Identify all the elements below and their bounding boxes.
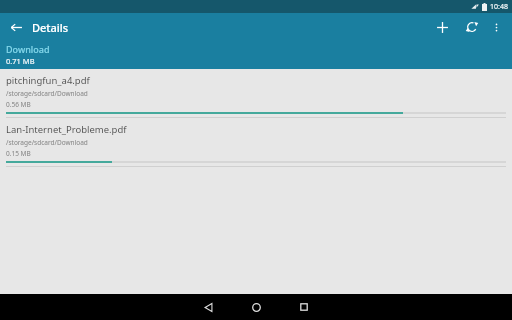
button[interactable]: More options bbox=[486, 17, 506, 37]
button[interactable]: Refresh bbox=[460, 15, 484, 39]
staticText: /storage/sdcard/Download bbox=[6, 89, 88, 98]
button[interactable]: Back bbox=[6, 16, 71, 38]
button[interactable]: Back bbox=[184, 294, 232, 320]
button[interactable]: Download bbox=[0, 41, 512, 69]
button[interactable]: Home bbox=[232, 294, 280, 320]
button[interactable]: Lan-Internet_Probleme.pdf bbox=[0, 118, 512, 166]
staticText: 0.15 MB bbox=[6, 149, 31, 158]
staticText: 0.56 MB bbox=[6, 100, 31, 109]
staticText: Download bbox=[6, 43, 50, 55]
staticText: 0.71 MB bbox=[6, 56, 35, 66]
button[interactable]: Add bbox=[430, 15, 454, 39]
other: Back bbox=[8, 19, 24, 35]
button[interactable]: pitchingfun_a4.pdf bbox=[0, 69, 512, 117]
staticText: pitchingfun_a4.pdf bbox=[6, 74, 90, 87]
button[interactable]: Recent apps bbox=[280, 294, 328, 320]
staticText: /storage/sdcard/Download bbox=[6, 138, 88, 147]
staticText: Details bbox=[32, 20, 69, 35]
staticText: 10:48 bbox=[490, 2, 508, 12]
staticText: Lan-Internet_Probleme.pdf bbox=[6, 123, 127, 136]
